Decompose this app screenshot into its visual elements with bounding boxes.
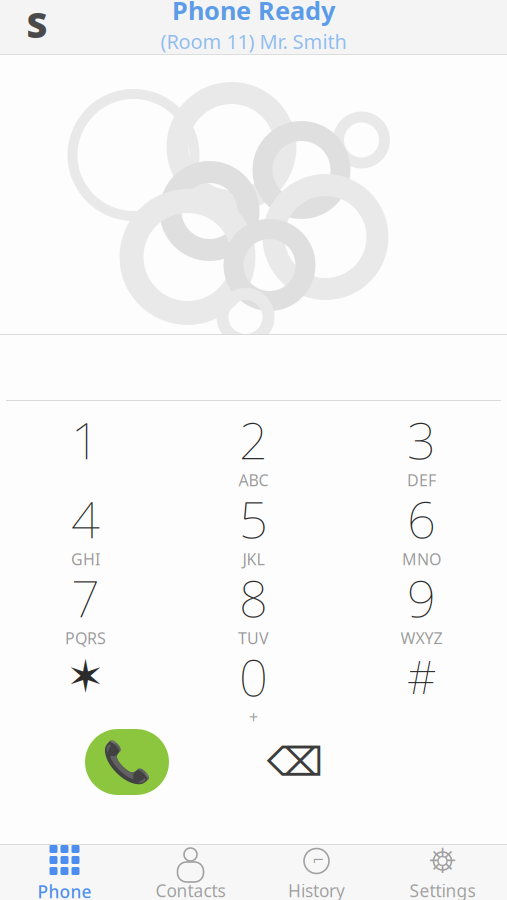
button[interactable]: 6	[337, 486, 505, 565]
button[interactable]: #	[337, 644, 505, 723]
staticText: TUV	[238, 627, 269, 649]
staticText: 3	[407, 406, 436, 473]
staticText: Phone Ready	[172, 0, 335, 27]
button[interactable]: 2	[169, 407, 337, 486]
button[interactable]: Menu	[8, 0, 66, 53]
staticText: ⌫	[266, 739, 323, 785]
button[interactable]: 5	[169, 486, 337, 565]
staticText: (Room 11) Mr. Smith	[160, 28, 346, 55]
staticText: ⌐	[312, 852, 324, 868]
staticText: WXYZ	[400, 627, 442, 649]
button[interactable]: 3	[337, 407, 505, 486]
staticText: MNO	[402, 548, 441, 570]
button[interactable]: Contacts	[127, 845, 253, 900]
button[interactable]: 1	[1, 407, 169, 486]
staticText: ✳	[428, 841, 457, 881]
staticText: S	[26, 0, 47, 48]
staticText: 9	[407, 564, 436, 631]
staticText: ABC	[238, 469, 268, 491]
staticText: +	[249, 706, 258, 728]
button[interactable]: ✳	[379, 845, 505, 900]
staticText: GHI	[71, 548, 100, 570]
staticText: Contacts	[155, 879, 225, 900]
staticText: 4	[71, 485, 100, 552]
staticText: 2	[239, 406, 268, 473]
button[interactable]: Call	[43, 725, 211, 799]
button[interactable]: 7	[1, 565, 169, 644]
staticText: 7	[71, 564, 100, 631]
staticText: Phone	[37, 880, 91, 900]
staticText: 6	[407, 485, 436, 552]
staticText: 5	[239, 485, 268, 552]
staticText: 0	[239, 643, 268, 710]
button[interactable]: 9	[337, 565, 505, 644]
button[interactable]: 4	[1, 486, 169, 565]
staticText: ✶	[66, 651, 104, 702]
button[interactable]: ✶	[1, 644, 169, 723]
staticText: 1	[71, 406, 100, 473]
button[interactable]: Phone	[1, 845, 127, 900]
staticText: Settings	[409, 879, 475, 900]
staticText: DEF	[407, 469, 436, 491]
staticText: PQRS	[65, 627, 106, 649]
button[interactable]: ⌐	[253, 845, 379, 900]
staticText: 8	[239, 564, 268, 631]
staticText: 📞	[102, 739, 152, 785]
staticText: JKL	[242, 548, 264, 570]
button[interactable]: Delete	[211, 725, 379, 799]
button[interactable]: 0	[169, 644, 337, 723]
staticText: #	[407, 646, 436, 707]
staticText: History	[288, 879, 345, 900]
button[interactable]: 8	[169, 565, 337, 644]
